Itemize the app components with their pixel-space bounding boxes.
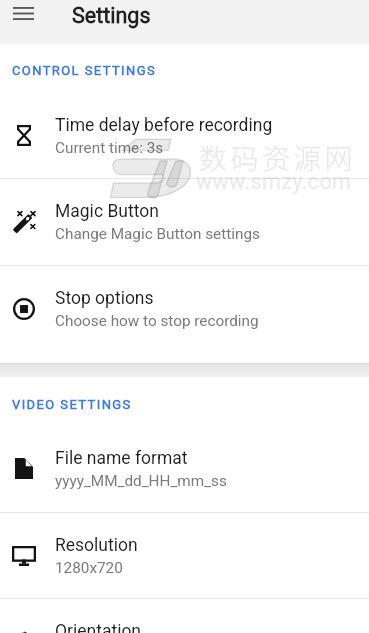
staticText: Choose how to stop recording — [55, 312, 259, 330]
staticText: www.smzy.com — [196, 169, 352, 194]
button[interactable]: Orientation — [0, 598, 369, 633]
button[interactable]: Magic Button — [0, 178, 369, 265]
staticText: Stop options — [55, 288, 154, 309]
staticText: 数码资源网 — [199, 137, 357, 178]
staticText: Settings — [72, 3, 151, 28]
staticText: Current time: 3s — [55, 139, 164, 157]
staticText: yyyy_MM_dd_HH_mm_ss — [55, 472, 227, 490]
staticText: Resolution — [55, 535, 138, 556]
button[interactable]: Stop options — [0, 265, 369, 352]
staticText: Time delay before recording — [55, 115, 273, 136]
button[interactable]: File name format — [0, 425, 369, 512]
staticText: Change Magic Button settings — [55, 225, 260, 243]
staticText: File name format — [55, 448, 188, 469]
staticText: Magic Button — [55, 201, 159, 222]
button[interactable]: Time delay before recording — [0, 92, 369, 179]
staticText: CONTROL SETTINGS — [12, 63, 157, 78]
staticText: VIDEO SETTINGS — [12, 397, 132, 412]
button[interactable]: Resolution — [0, 512, 369, 599]
button[interactable]: Open navigation menu — [5, 0, 41, 31]
staticText: Orientation — [55, 621, 142, 633]
staticText: 1280x720 — [55, 559, 123, 577]
